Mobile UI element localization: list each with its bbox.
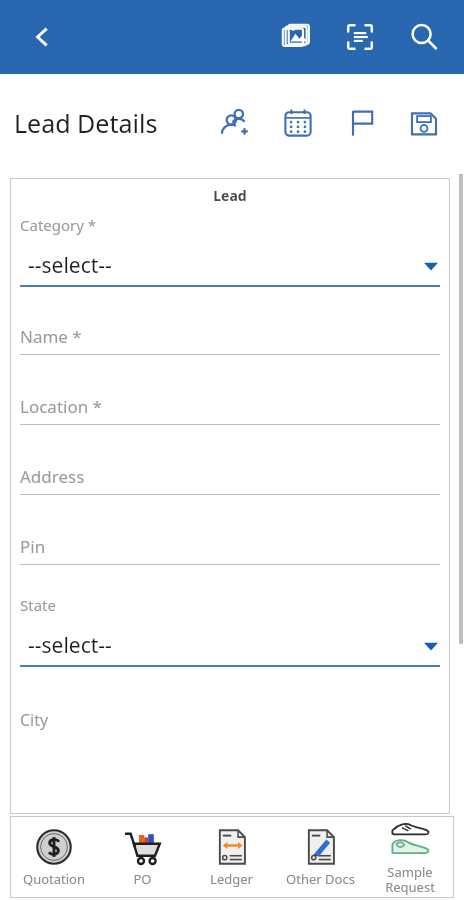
staticText: Name *: [20, 325, 82, 348]
button[interactable]: Category *: [10, 215, 450, 287]
staticText: Location *: [20, 395, 102, 418]
staticText: Sample Request: [385, 863, 435, 896]
button[interactable]: Scan document: [334, 11, 386, 63]
staticText: Pin: [20, 535, 46, 558]
staticText: State: [20, 595, 56, 615]
button[interactable]: Back: [20, 15, 64, 59]
staticText: Quotation: [23, 870, 85, 888]
staticText: PO: [133, 870, 152, 888]
staticText: City: [20, 709, 49, 731]
button[interactable]: Gallery: [270, 11, 322, 63]
button[interactable]: Search: [398, 11, 450, 63]
button[interactable]: Sample Request: [365, 816, 454, 898]
staticText: Other Docs: [286, 870, 355, 888]
staticText: Category *: [20, 215, 97, 235]
button[interactable]: PO: [98, 816, 187, 898]
staticText: --select--: [28, 251, 424, 280]
button[interactable]: Other Docs: [276, 816, 365, 898]
button[interactable]: Name *: [10, 325, 450, 355]
staticText: --select--: [28, 631, 424, 660]
button[interactable]: State: [10, 595, 450, 667]
staticText: Ledger: [210, 870, 253, 888]
staticText: Address: [20, 465, 85, 488]
button[interactable]: Calendar: [272, 97, 324, 149]
button[interactable]: Ledger: [187, 816, 276, 898]
button[interactable]: Save: [398, 97, 450, 149]
staticText: Lead Details: [14, 106, 158, 140]
button[interactable]: Flag: [336, 97, 388, 149]
button[interactable]: Add contact: [208, 97, 260, 149]
button[interactable]: Address: [10, 465, 450, 495]
button[interactable]: Pin: [10, 535, 450, 565]
button[interactable]: Location *: [10, 395, 450, 425]
button[interactable]: Quotation: [10, 816, 98, 898]
staticText: Lead: [10, 186, 450, 205]
